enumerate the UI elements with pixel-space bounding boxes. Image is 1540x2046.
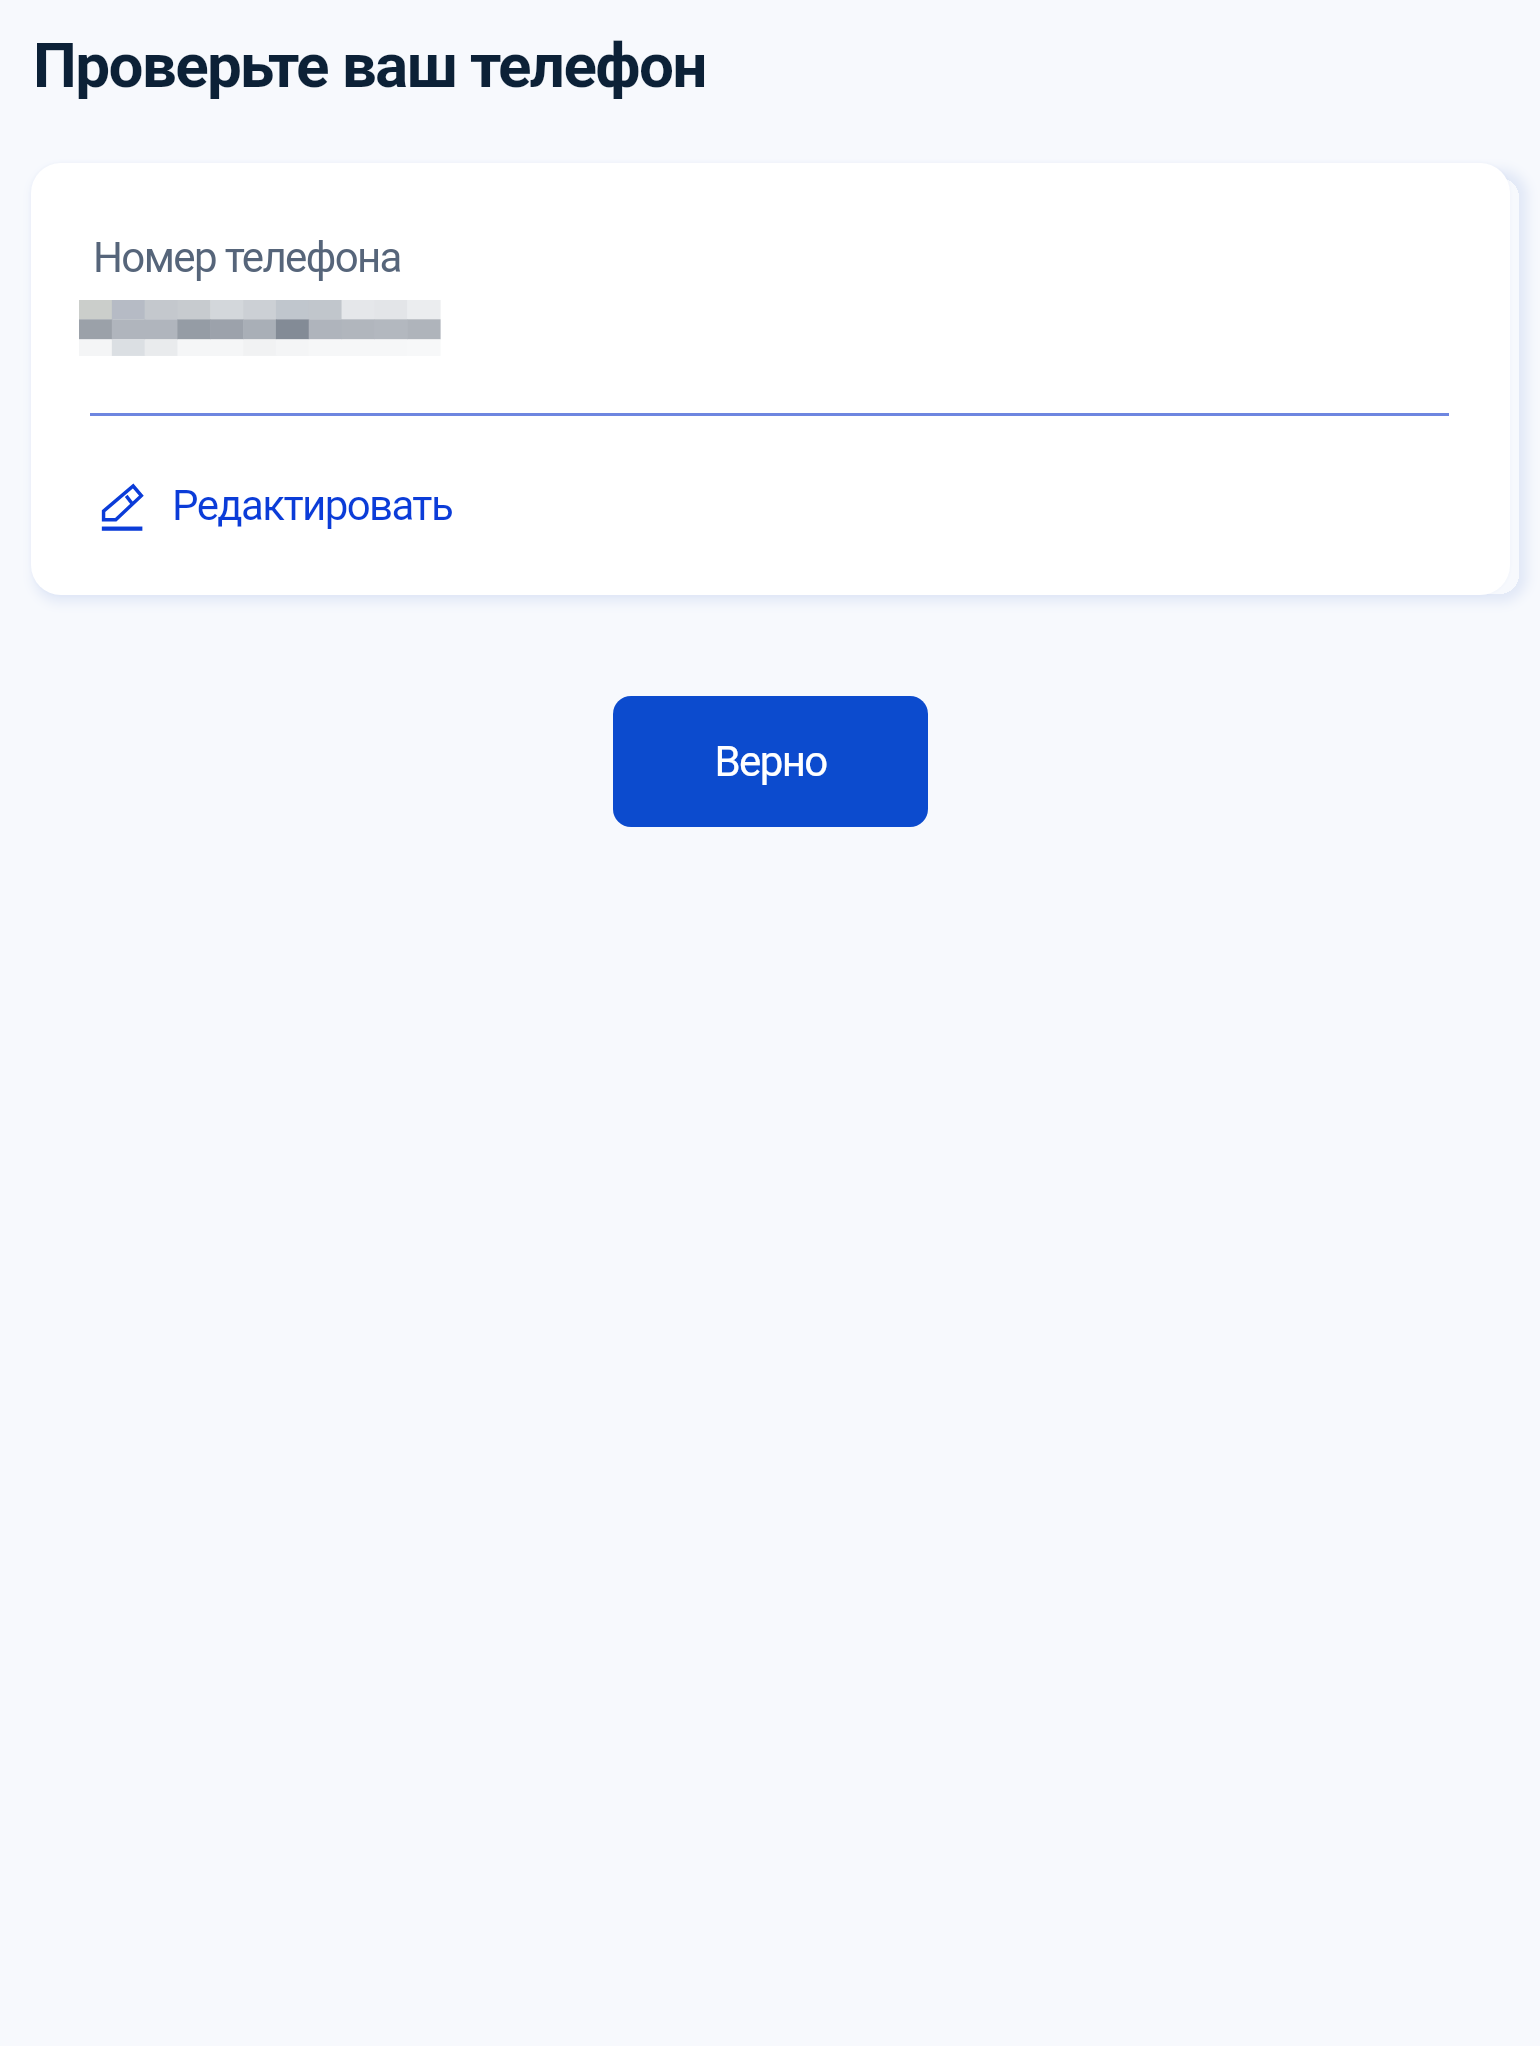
- staticText: Редактировать: [172, 481, 453, 530]
- button[interactable]: Верно: [613, 696, 928, 827]
- button[interactable]: Редактировать: [101, 484, 453, 533]
- staticText: Номер телефона: [93, 233, 401, 282]
- staticText: Верно: [714, 737, 827, 786]
- staticText: Проверьте ваш телефон: [33, 29, 706, 102]
- other: Редактировать: [101, 484, 143, 531]
